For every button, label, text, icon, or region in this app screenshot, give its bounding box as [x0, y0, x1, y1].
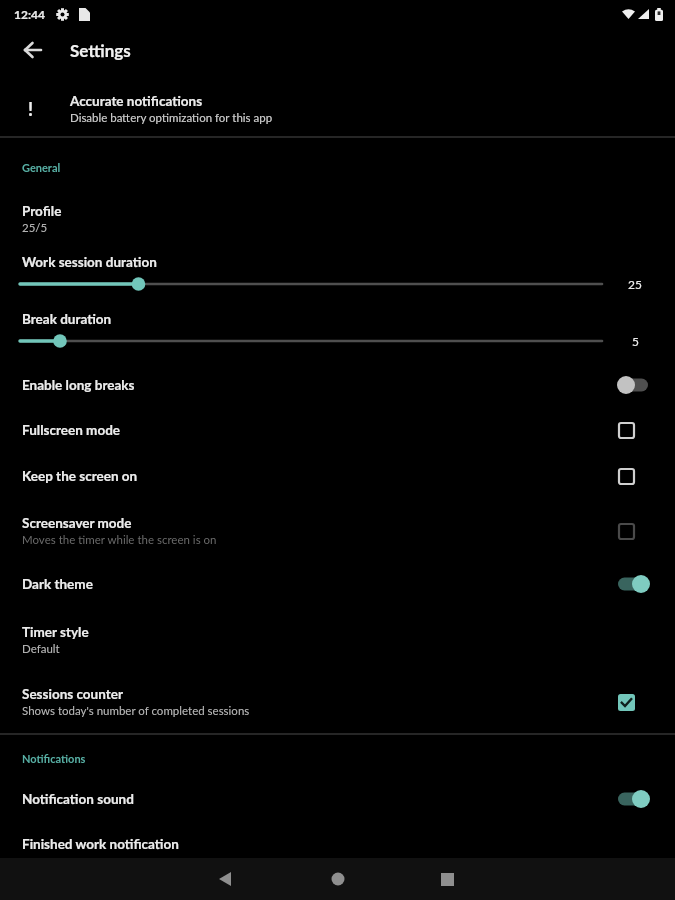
button[interactable]: Timer style [0, 617, 675, 663]
staticText: ! [28, 98, 34, 120]
staticText: Break duration [22, 311, 112, 327]
staticText: Settings [70, 40, 131, 60]
staticText: Dark theme [22, 576, 93, 592]
staticText: Notifications [22, 752, 86, 765]
button[interactable] [433, 865, 461, 893]
staticText: Keep the screen on [22, 468, 138, 484]
staticText: Default [22, 642, 60, 656]
staticText: Notification sound [22, 791, 134, 807]
staticText: Sessions counter [22, 686, 123, 702]
staticText: Work session duration [22, 254, 157, 270]
button[interactable] [16, 33, 50, 67]
button[interactable]: ! [0, 84, 675, 134]
staticText: 25 [628, 277, 642, 291]
staticText: 5 [632, 334, 639, 348]
staticText: Fullscreen mode [22, 422, 121, 438]
staticText: 25/5 [22, 221, 48, 235]
staticText: Shows today's number of completed sessio… [22, 704, 250, 718]
button[interactable] [324, 865, 352, 893]
staticText: 12:44 [14, 7, 45, 21]
staticText: Enable long breaks [22, 377, 135, 393]
button[interactable]: Profile [0, 196, 675, 242]
button[interactable] [211, 865, 239, 893]
staticText: Finished work notification [22, 836, 179, 852]
staticText: General [22, 161, 61, 174]
button[interactable]: Notification sound [0, 776, 675, 822]
button[interactable]: Break duration [0, 307, 675, 359]
button[interactable]: Sessions counter [0, 677, 675, 727]
button[interactable]: Finished work notification [0, 827, 675, 861]
button[interactable]: Work session duration [0, 250, 675, 302]
staticText: Screensaver mode [22, 515, 132, 531]
button[interactable]: Enable long breaks [0, 363, 675, 406]
button[interactable]: Dark theme [0, 561, 675, 607]
staticText: Timer style [22, 624, 89, 640]
staticText: Accurate notifications [70, 93, 203, 109]
button[interactable]: Fullscreen mode [0, 407, 675, 453]
staticText: Moves the timer while the screen is on [22, 533, 217, 547]
staticText: Disable battery optimization for this ap… [70, 111, 273, 125]
button[interactable]: Keep the screen on [0, 453, 675, 499]
button[interactable]: Screensaver mode [0, 506, 675, 556]
staticText: Profile [22, 203, 62, 219]
